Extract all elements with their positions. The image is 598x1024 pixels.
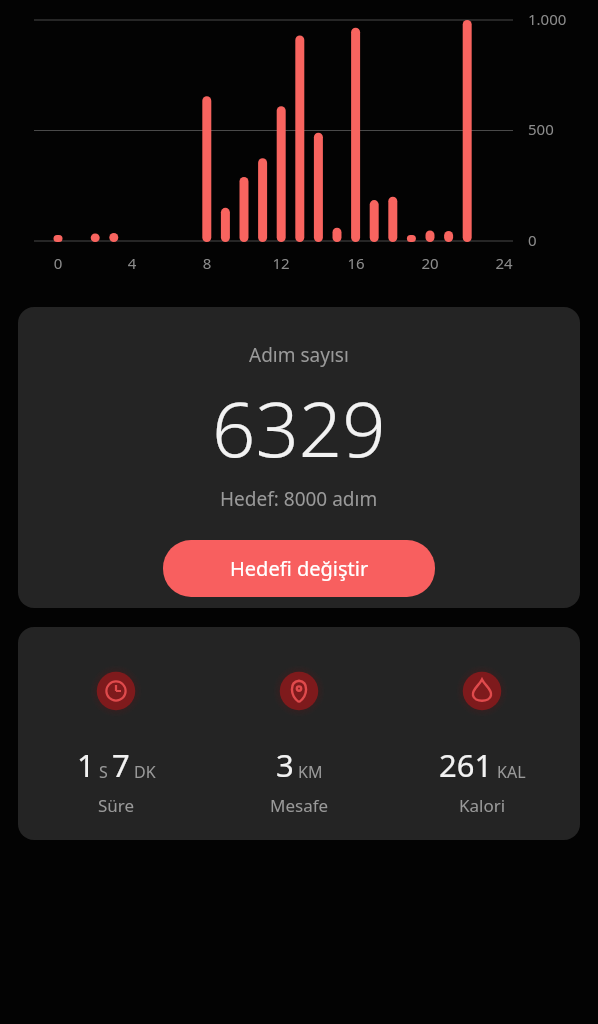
staticText: Adım sayısı <box>249 342 349 368</box>
button[interactable]: Hedefi değiştir <box>163 540 435 597</box>
staticText: KAL <box>497 761 526 783</box>
other: Kalori <box>456 665 508 717</box>
staticText: 0 <box>38 253 78 273</box>
staticText: S <box>99 761 108 783</box>
staticText: 500 <box>528 119 554 139</box>
staticText: DK <box>134 761 156 783</box>
staticText: 6329 <box>212 376 386 480</box>
staticText: 1 <box>77 744 95 786</box>
other: Mesafe <box>273 665 325 717</box>
staticText: KM <box>298 761 323 783</box>
staticText: 3 <box>276 744 294 786</box>
staticText: 24 <box>484 253 524 273</box>
button[interactable]: Mesafe <box>214 627 384 817</box>
staticText: 20 <box>410 253 450 273</box>
staticText: 261 <box>439 744 493 786</box>
staticText: 7 <box>112 744 130 786</box>
staticText: 1.000 <box>528 9 567 29</box>
staticText: Hedef: 8000 adım <box>220 486 378 512</box>
button[interactable]: Kalori <box>397 627 567 817</box>
staticText: 8 <box>187 253 227 273</box>
staticText: 12 <box>261 253 301 273</box>
staticText: Kalori <box>459 794 506 817</box>
staticText: 0 <box>528 230 537 250</box>
other: Süre <box>90 665 142 717</box>
staticText: 4 <box>112 253 152 273</box>
staticText: 16 <box>336 253 376 273</box>
staticText: Hedefi değiştir <box>230 555 369 582</box>
button[interactable]: Süre <box>31 627 201 817</box>
staticText: Mesafe <box>270 794 329 817</box>
staticText: Süre <box>98 794 135 817</box>
button[interactable]: Adım sayısı <box>18 307 580 608</box>
